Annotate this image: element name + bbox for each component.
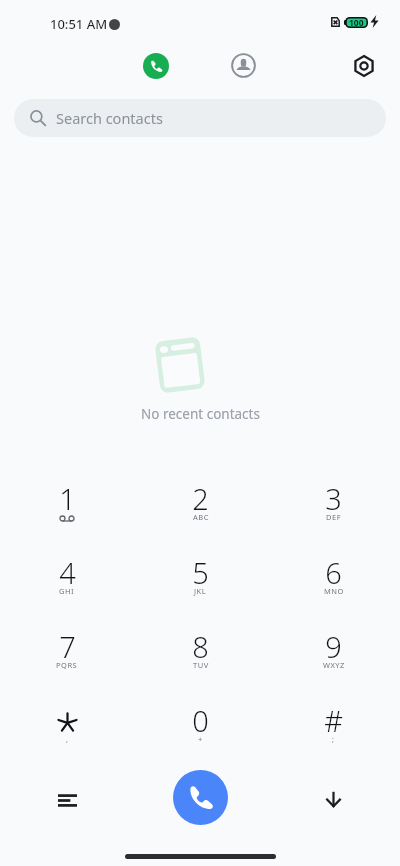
staticText: GHI	[59, 586, 75, 596]
button[interactable]: Search contacts	[14, 99, 386, 137]
button[interactable]: 7	[0, 618, 134, 692]
staticText: ,	[66, 734, 69, 744]
button[interactable]: 3	[267, 470, 400, 544]
staticText: 10:51 AM	[50, 15, 108, 33]
staticText: No recent contacts	[141, 405, 260, 423]
staticText: PQRS	[56, 660, 78, 670]
button[interactable]: 4	[0, 544, 134, 618]
staticText: 0	[192, 701, 209, 740]
staticText: 7	[59, 627, 76, 666]
button[interactable]: Settings	[338, 43, 390, 88]
staticText: ABC	[193, 512, 209, 522]
staticText: JKL	[194, 586, 207, 596]
staticText: +	[198, 734, 203, 744]
staticText: #	[324, 701, 343, 740]
staticText: 3	[325, 479, 342, 518]
button[interactable]: star	[0, 692, 134, 766]
button[interactable]: Menu	[44, 777, 90, 823]
button[interactable]: #	[267, 692, 400, 766]
button[interactable]: Recents	[130, 43, 182, 88]
staticText: Search contacts	[56, 108, 163, 128]
staticText: WXYZ	[323, 660, 345, 670]
staticText: TUV	[193, 660, 209, 670]
staticText: 9	[325, 627, 342, 666]
staticText: DEF	[326, 512, 342, 522]
staticText: ;	[332, 734, 335, 744]
staticText: 2	[192, 479, 209, 518]
button[interactable]: Contacts	[217, 43, 269, 88]
button[interactable]: 5	[134, 544, 267, 618]
staticText: 5	[192, 553, 209, 592]
staticText: MNO	[324, 586, 344, 596]
staticText: 1	[59, 479, 76, 518]
button[interactable]: 0	[134, 692, 267, 766]
button[interactable]: Hide dialpad	[310, 776, 356, 822]
button[interactable]: Call	[173, 770, 228, 825]
staticText: 8	[192, 627, 209, 666]
button[interactable]: 8	[134, 618, 267, 692]
staticText: 100	[349, 17, 364, 29]
staticText: 6	[325, 553, 342, 592]
staticText: 4	[59, 553, 76, 592]
button[interactable]: 1	[0, 470, 134, 544]
button[interactable]: 9	[267, 618, 400, 692]
button[interactable]: 2	[134, 470, 267, 544]
button[interactable]: 6	[267, 544, 400, 618]
